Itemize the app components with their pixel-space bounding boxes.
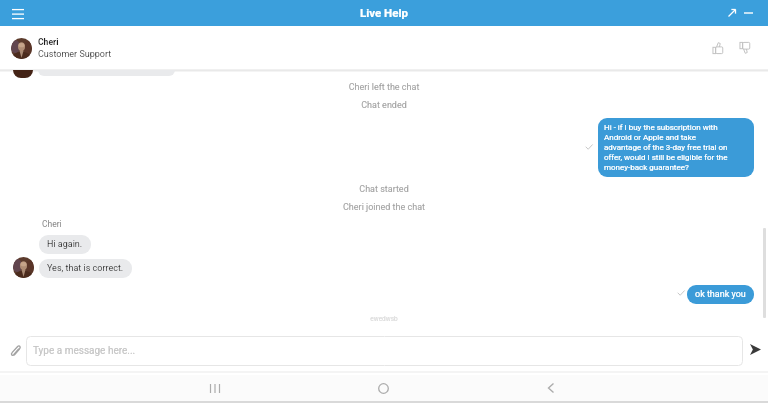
button[interactable]: Thumbs down [732, 35, 758, 61]
staticText: Cheri joined the chat [0, 202, 768, 213]
button[interactable]: Type a message here... [26, 336, 743, 366]
staticText: Chat ended [0, 100, 768, 111]
staticText: Type a message here... [33, 345, 136, 357]
staticText: Cheri [42, 219, 62, 229]
staticText: Hi - if I buy the subscription with Andr… [604, 123, 728, 172]
button[interactable]: Yes, that is correct. [39, 259, 132, 278]
button[interactable]: Recent apps [200, 374, 228, 402]
button[interactable]: Thumbs up [705, 35, 731, 61]
button[interactable]: Hi - if I buy the subscription with Andr… [598, 118, 754, 177]
button[interactable]: Back [537, 374, 565, 402]
staticText: Cheri [38, 37, 59, 47]
staticText: ok thank you [695, 289, 746, 300]
staticText: Cheri left the chat [0, 82, 768, 93]
staticText: ewedwsb [0, 315, 768, 323]
button[interactable]: Expand [722, 3, 742, 23]
button[interactable]: Send [744, 338, 766, 360]
button[interactable]: Attach file [7, 343, 23, 359]
staticText: Live Help [360, 6, 408, 19]
staticText: Yes, that is correct. [47, 263, 124, 274]
staticText: Customer Support [38, 49, 112, 60]
button[interactable]: Menu [7, 2, 29, 24]
staticText: Chat started [0, 184, 768, 195]
button[interactable]: Home [369, 374, 397, 402]
staticText: Hi again. [47, 239, 83, 250]
button[interactable]: ok thank you [687, 285, 754, 304]
button[interactable]: Minimize [738, 3, 758, 23]
button[interactable]: Hi again. [39, 235, 91, 254]
